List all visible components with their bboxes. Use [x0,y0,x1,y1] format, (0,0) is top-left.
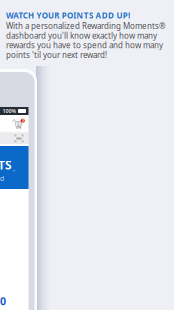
button[interactable]: Shopping cart [8,115,28,132]
staticText: WATCH YOUR POINTS ADD UP! [6,10,130,21]
staticText: With a personalized Rewarding Moments® d… [6,21,166,60]
staticText: NTS [0,157,12,173]
button[interactable]: Search [0,133,28,144]
staticText: 100% [2,107,16,115]
staticText: 0 [0,294,6,308]
staticText: 2 [22,118,24,123]
staticText: ward [0,174,4,183]
